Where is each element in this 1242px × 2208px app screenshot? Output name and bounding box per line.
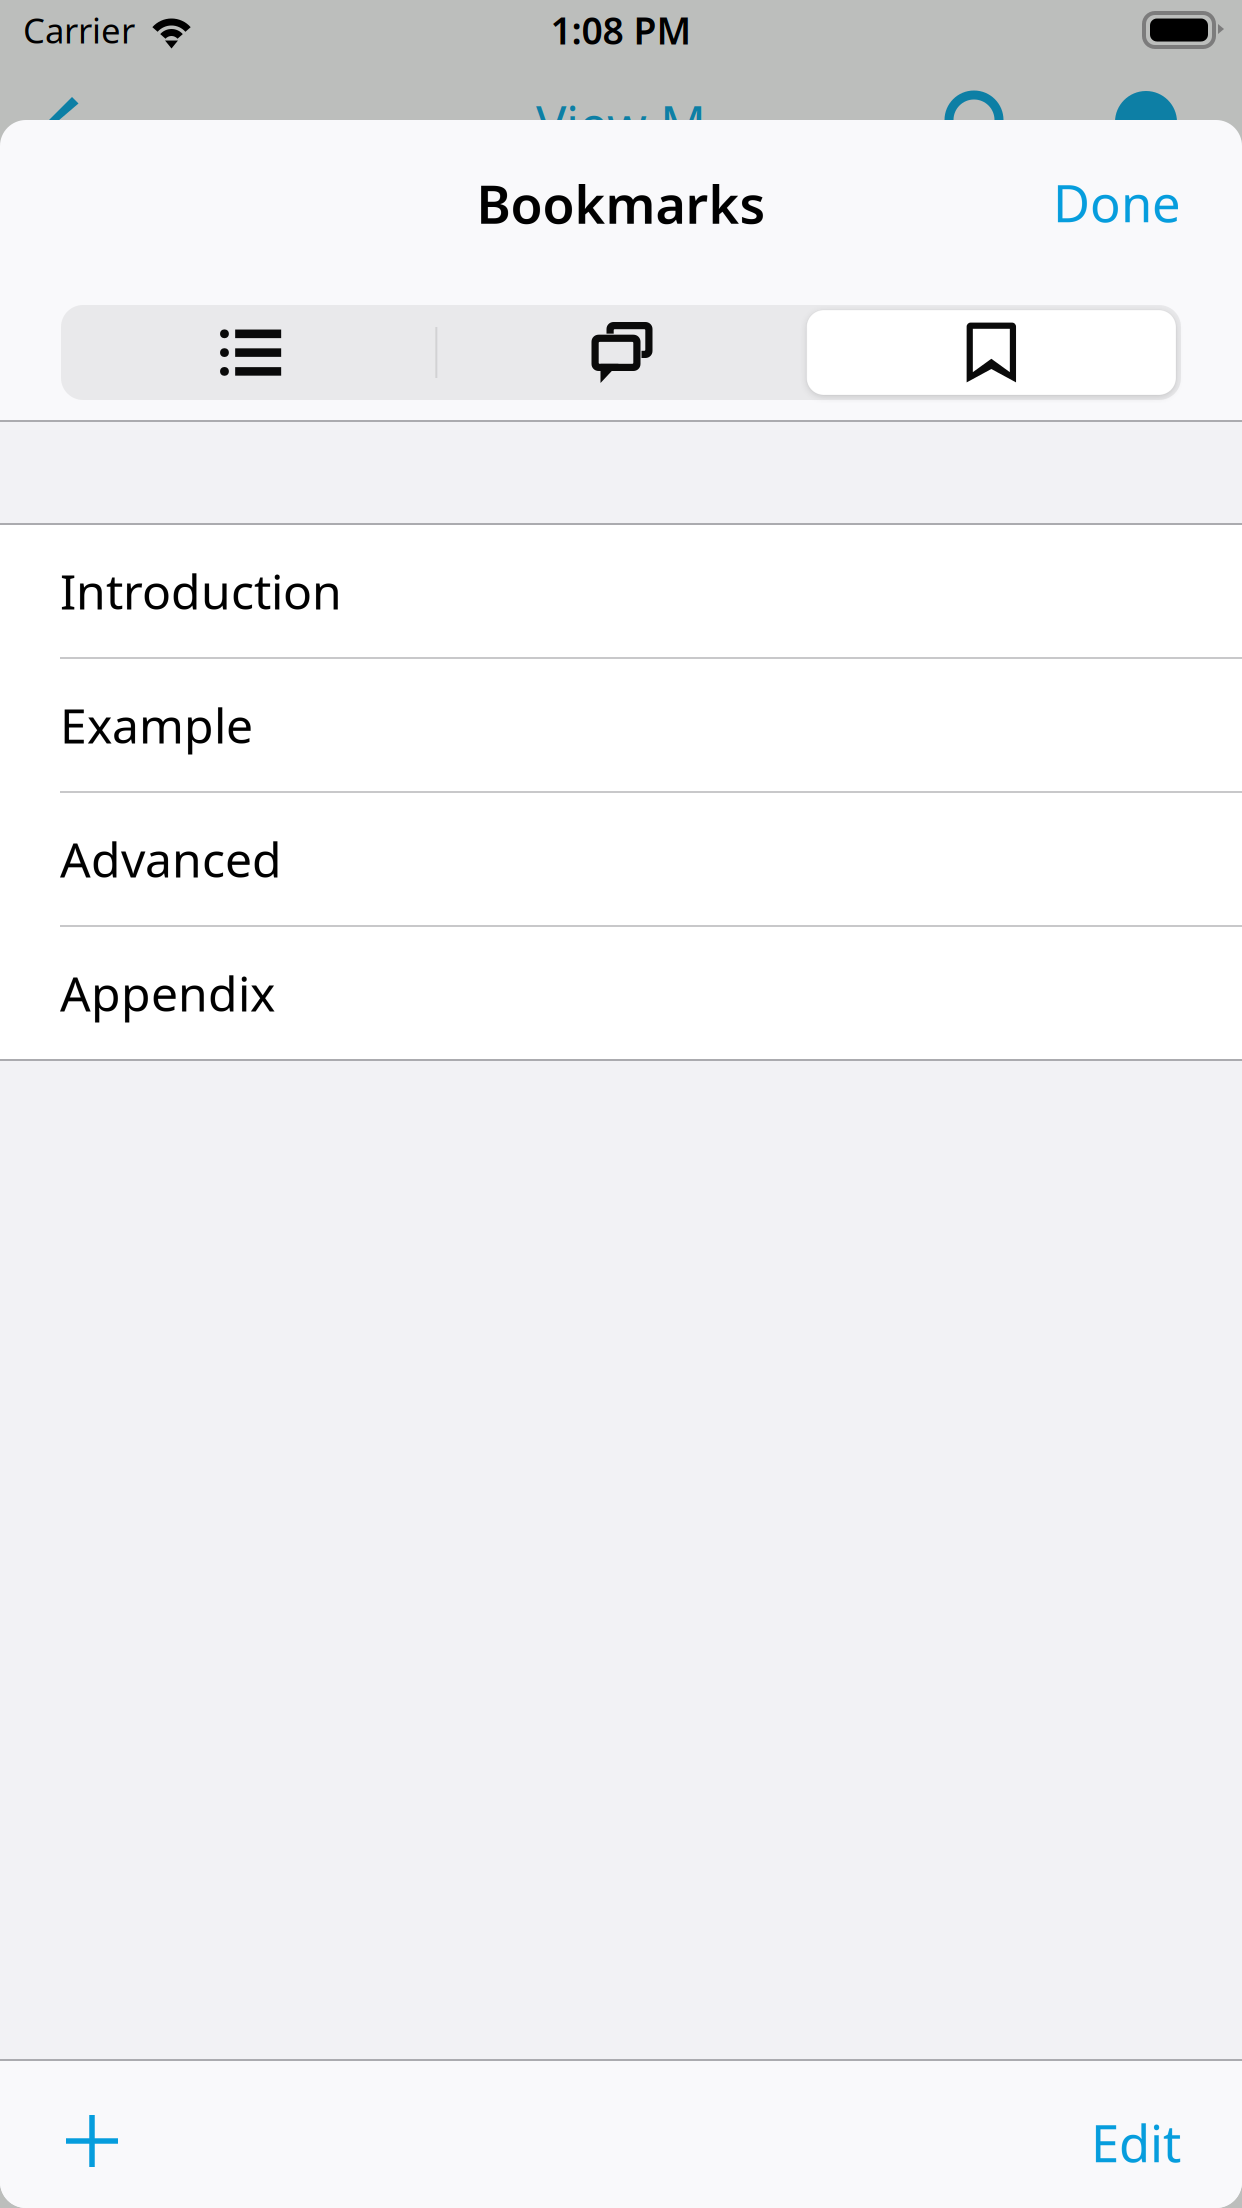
- button[interactable]: Bookmarks: [807, 310, 1176, 395]
- button[interactable]: Add bookmark: [0, 2059, 152, 2208]
- staticText: Advanced: [60, 827, 282, 891]
- button[interactable]: Advanced: [0, 793, 1242, 925]
- button[interactable]: Notes: [437, 311, 807, 394]
- staticText: Introduction: [60, 559, 342, 623]
- button[interactable]: Appendix: [0, 927, 1242, 1059]
- button[interactable]: Example: [0, 659, 1242, 791]
- staticText: 1:08 PM: [550, 5, 691, 55]
- staticText: Carrier: [23, 7, 135, 53]
- button[interactable]: Done: [1023, 119, 1242, 306]
- staticText: View M: [536, 90, 706, 157]
- staticText: Edit: [1091, 2109, 1181, 2176]
- button[interactable]: Introduction: [0, 525, 1242, 657]
- staticText: Done: [1053, 169, 1181, 236]
- button[interactable]: Contents: [66, 311, 435, 394]
- staticText: Example: [60, 693, 253, 757]
- staticText: Bookmarks: [476, 169, 765, 238]
- staticText: Appendix: [60, 961, 275, 1025]
- button[interactable]: Edit: [1061, 2076, 1242, 2193]
